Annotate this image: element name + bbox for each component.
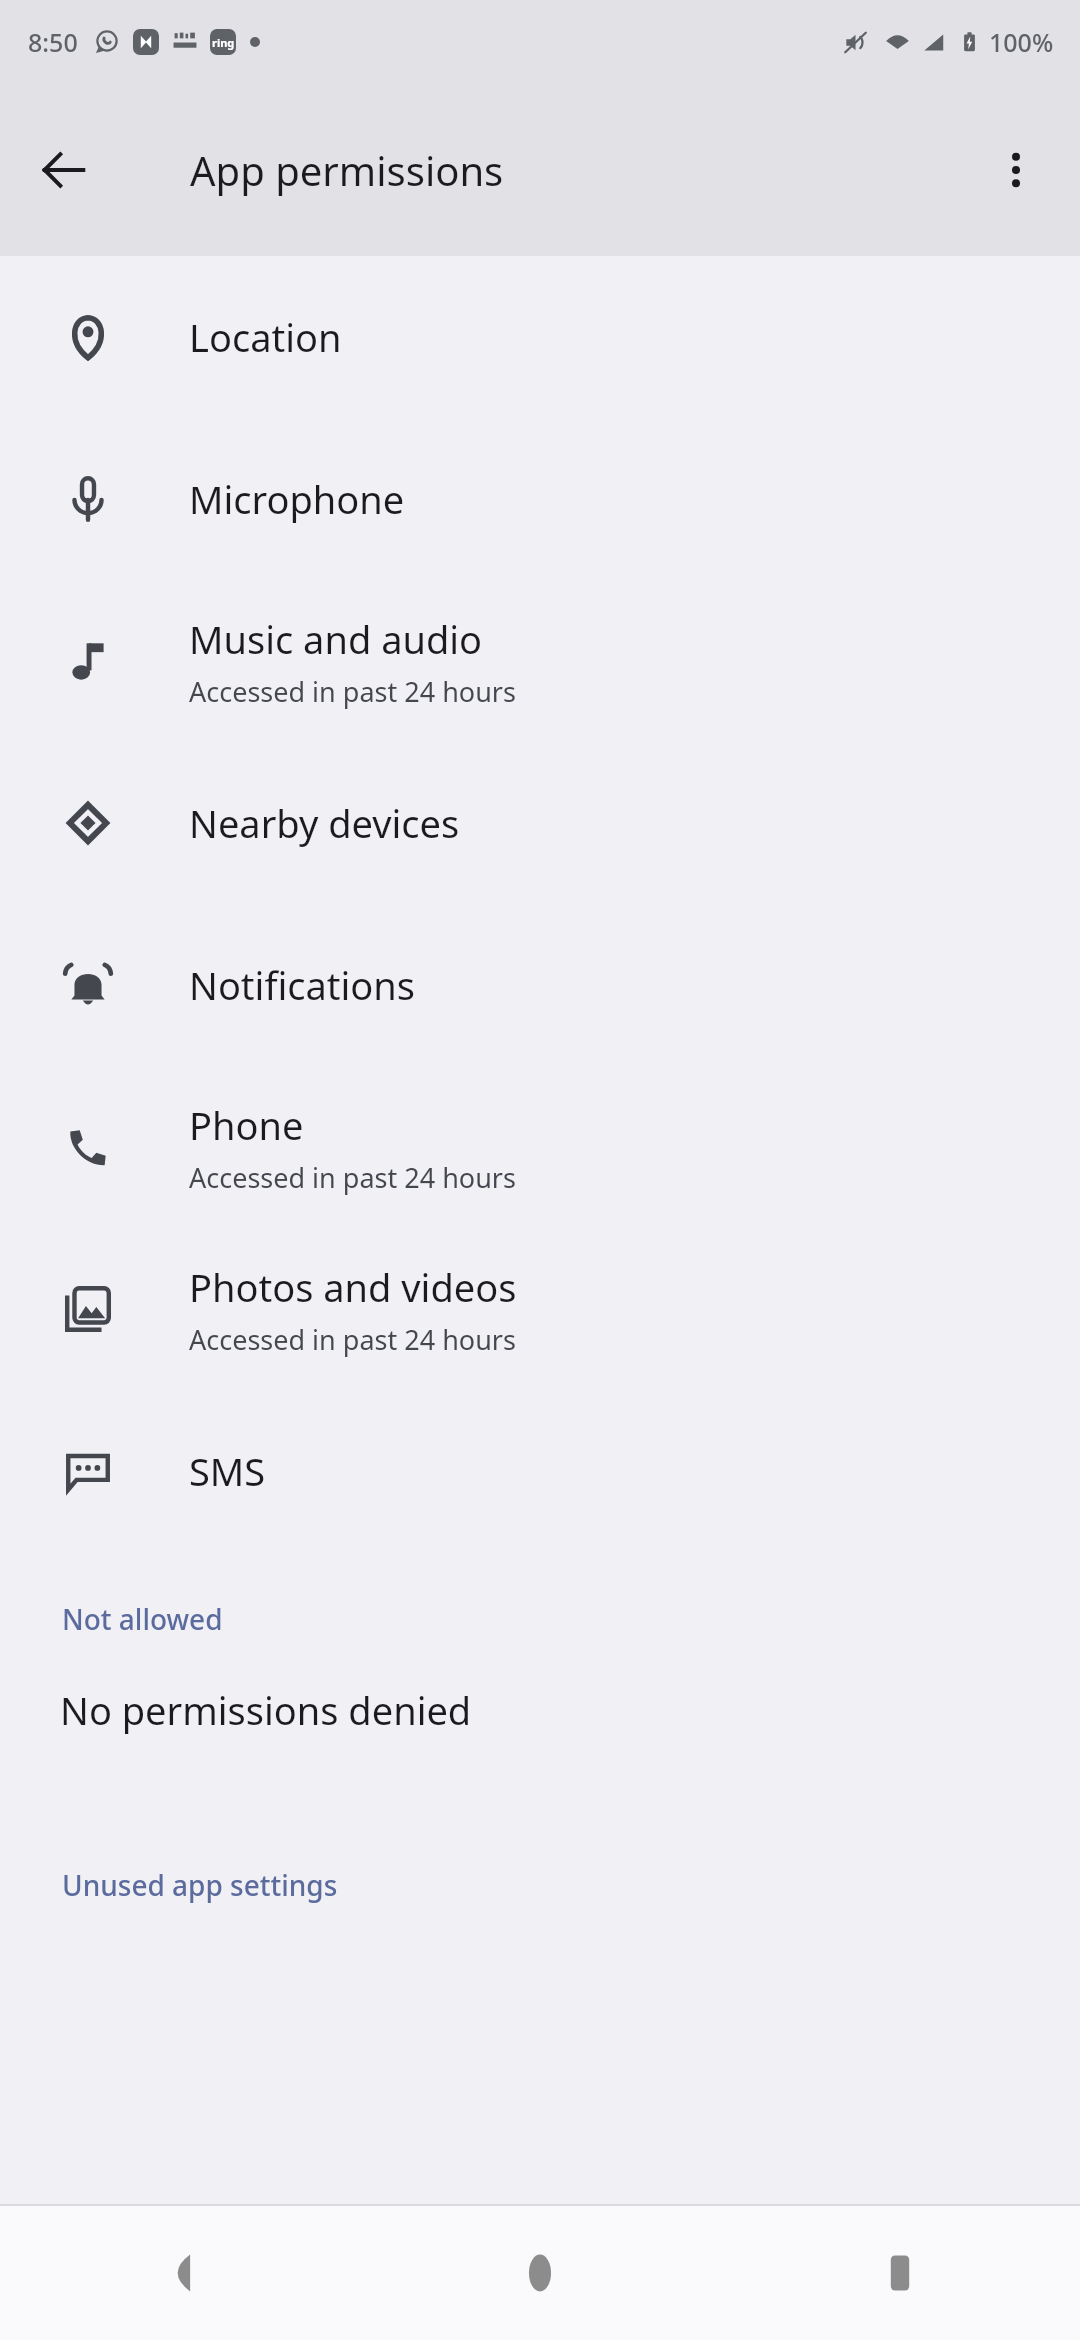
staticText: Notifications [189,959,416,1011]
button[interactable]: Nearby devices [0,742,1080,904]
staticText: Location [189,311,342,363]
button[interactable]: Back [0,2206,360,2340]
staticText: 100% [989,25,1054,59]
staticText: 8:50 [28,25,78,59]
button[interactable]: SMS [0,1390,1080,1552]
staticText: Photos and videos [189,1261,517,1313]
button[interactable]: No permissions denied [0,1684,1080,1736]
button[interactable]: Back [22,128,106,212]
button[interactable]: More options [974,128,1058,212]
staticText: Microphone [189,473,405,525]
button[interactable]: Notifications [0,904,1080,1066]
staticText: Unused app settings [62,1866,338,1904]
button[interactable]: Phone [0,1066,1080,1228]
staticText: Accessed in past 24 hours [189,1159,516,1196]
button[interactable]: Home [360,2206,720,2340]
staticText: Accessed in past 24 hours [189,673,516,710]
staticText: Accessed in past 24 hours [189,1321,516,1358]
button[interactable]: Photos and videos [0,1228,1080,1390]
staticText: ring [212,35,235,50]
button[interactable]: Music and audio [0,580,1080,742]
button[interactable]: Microphone [0,418,1080,580]
staticText: Phone [189,1099,304,1151]
staticText: No permissions denied [60,1684,472,1736]
staticText: Not allowed [62,1600,223,1638]
staticText: SMS [189,1445,266,1497]
staticText: Nearby devices [189,797,460,849]
staticText: App permissions [190,143,504,197]
button[interactable]: Location [0,256,1080,418]
button[interactable]: Unused app settings [0,1866,1080,1904]
staticText: Music and audio [189,613,483,665]
button[interactable]: Recent apps [720,2206,1080,2340]
